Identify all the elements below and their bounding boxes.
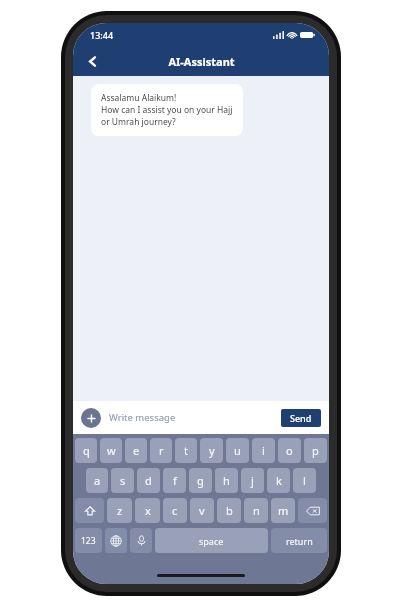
button[interactable]: q (75, 438, 97, 463)
button[interactable]: a (86, 468, 108, 493)
staticText: l (303, 473, 306, 488)
staticText: m (278, 503, 289, 518)
staticText: j (251, 473, 254, 488)
button[interactable]: r (150, 438, 172, 463)
button[interactable]: z (107, 498, 132, 523)
button[interactable]: Voice input (130, 528, 152, 553)
button[interactable]: s (111, 468, 134, 493)
staticText: u (234, 443, 241, 458)
staticText: a (94, 473, 101, 488)
staticText: x (145, 503, 151, 518)
button[interactable]: h (215, 468, 238, 493)
button[interactable]: Add attachment (81, 408, 101, 428)
staticText: z (117, 503, 123, 518)
staticText: d (145, 473, 152, 488)
staticText: r (159, 443, 164, 458)
staticText: space (199, 535, 224, 547)
staticText: w (107, 443, 116, 458)
staticText: g (197, 473, 204, 488)
button[interactable]: w (100, 438, 122, 463)
staticText: s (120, 473, 126, 488)
staticText: q (83, 443, 90, 458)
button[interactable]: i (252, 438, 275, 463)
staticText: return (286, 535, 313, 547)
staticText: y (209, 443, 215, 458)
button[interactable]: y (200, 438, 223, 463)
button[interactable]: o (278, 438, 301, 463)
staticText: h (223, 473, 230, 488)
staticText: n (253, 503, 260, 518)
staticText: b (226, 503, 233, 518)
button[interactable]: Back (79, 48, 105, 74)
button[interactable]: m (271, 498, 295, 523)
staticText: p (312, 443, 319, 458)
staticText: AI-Assistant (168, 54, 235, 69)
button[interactable]: Backspace (298, 498, 327, 523)
button[interactable]: return (271, 528, 327, 553)
button[interactable]: t (175, 438, 197, 463)
button[interactable]: n (244, 498, 268, 523)
button[interactable]: k (267, 468, 290, 493)
staticText: e (133, 443, 140, 458)
staticText: or Umrah journey? (101, 116, 176, 128)
staticText: k (276, 473, 282, 488)
staticText: Send (290, 412, 312, 424)
button[interactable]: x (135, 498, 160, 523)
button[interactable]: d (137, 468, 160, 493)
button[interactable]: 123 (75, 528, 102, 553)
button[interactable]: e (125, 438, 147, 463)
button[interactable]: p (304, 438, 327, 463)
staticText: 123 (81, 535, 96, 547)
button[interactable]: Write message (109, 401, 275, 434)
staticText: v (199, 503, 205, 518)
button[interactable]: g (189, 468, 212, 493)
button[interactable]: Send (281, 409, 321, 427)
button[interactable]: j (241, 468, 264, 493)
staticText: o (286, 443, 293, 458)
staticText: f (173, 473, 177, 488)
staticText: How can I assist you on your Hajj (101, 104, 233, 116)
staticText: Write message (109, 411, 176, 424)
staticText: t (184, 443, 188, 458)
button[interactable]: Change language (105, 528, 127, 553)
button[interactable]: u (226, 438, 249, 463)
staticText: c (172, 503, 178, 518)
staticText: Assalamu Alaikum! (101, 92, 177, 104)
button[interactable]: space (155, 528, 268, 553)
staticText: 13:44 (90, 29, 114, 41)
button[interactable]: v (190, 498, 214, 523)
button[interactable]: Assalamu Alaikum! (91, 84, 243, 136)
staticText: i (262, 443, 265, 458)
button[interactable]: c (163, 498, 187, 523)
button[interactable]: l (293, 468, 316, 493)
button[interactable]: b (217, 498, 241, 523)
button[interactable]: f (163, 468, 186, 493)
button[interactable]: Shift (75, 498, 104, 523)
